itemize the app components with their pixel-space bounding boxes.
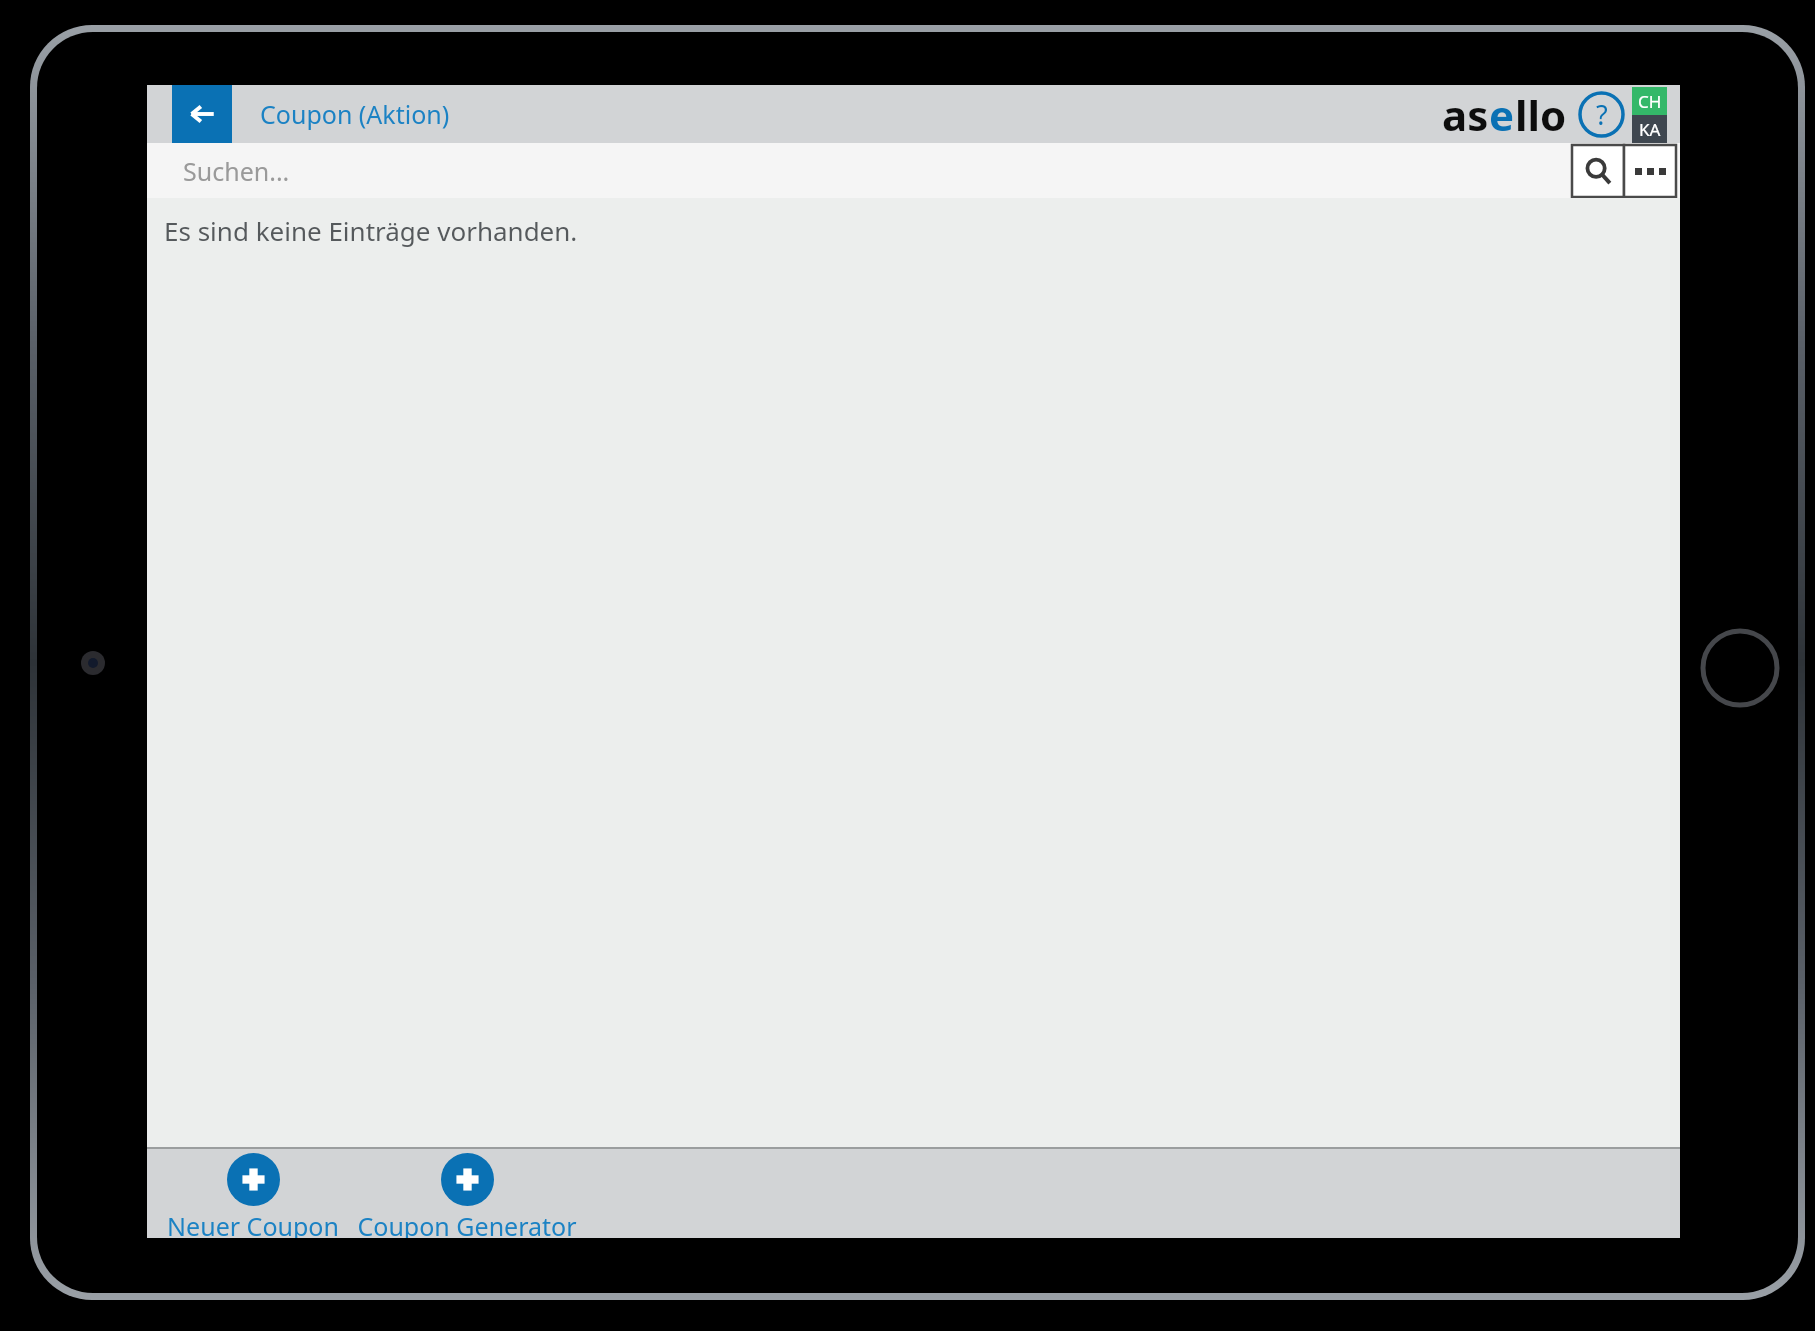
button[interactable]: CH bbox=[1632, 87, 1667, 115]
staticText: e bbox=[1489, 86, 1515, 143]
button[interactable]: Zurück bbox=[172, 85, 232, 143]
staticText: ? bbox=[1596, 96, 1608, 133]
staticText: Coupon Generator bbox=[357, 1209, 577, 1238]
staticText: KA bbox=[1639, 118, 1661, 141]
button[interactable]: Suchen bbox=[1572, 145, 1624, 197]
staticText: Coupon (Aktion) bbox=[260, 97, 450, 131]
staticText: Es sind keine Einträge vorhanden. bbox=[164, 213, 578, 248]
staticText: llo bbox=[1515, 86, 1567, 143]
staticText: Suchen... bbox=[183, 154, 290, 188]
button[interactable]: Hilfe bbox=[1578, 91, 1625, 138]
staticText: as bbox=[1442, 86, 1489, 143]
button[interactable]: Mehr Optionen bbox=[1624, 145, 1676, 197]
button[interactable]: Coupon Generator bbox=[357, 1153, 577, 1238]
button[interactable]: Neuer Coupon bbox=[167, 1153, 339, 1238]
staticText: CH bbox=[1638, 90, 1662, 113]
button[interactable]: KA bbox=[1632, 115, 1667, 143]
staticText: Neuer Coupon bbox=[167, 1209, 339, 1238]
